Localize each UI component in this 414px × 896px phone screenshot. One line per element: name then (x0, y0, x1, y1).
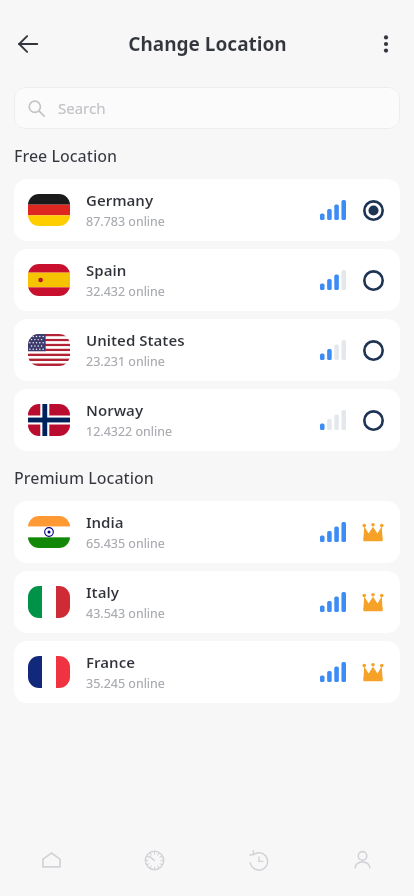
staticText: Spain (86, 260, 127, 280)
button[interactable]: Germany (14, 179, 400, 241)
staticText: Change Location (128, 31, 287, 57)
button[interactable]: Norway (14, 389, 400, 451)
staticText: 32.432 online (86, 283, 165, 300)
staticText: Italy (86, 582, 119, 602)
button[interactable]: Premium location (360, 519, 386, 545)
staticText: India (86, 512, 124, 532)
button[interactable]: Premium location (360, 589, 386, 615)
button[interactable]: India (14, 501, 400, 563)
staticText: 12.4322 online (86, 423, 173, 440)
button[interactable]: History (206, 825, 310, 896)
staticText: 43.543 online (86, 605, 165, 622)
button[interactable]: Select location (360, 267, 386, 293)
button[interactable]: Back (6, 22, 50, 66)
button[interactable]: United States (14, 319, 400, 381)
staticText: Free Location (14, 145, 118, 167)
staticText: United States (86, 330, 185, 350)
staticText: Search (58, 98, 106, 118)
button[interactable]: More options (366, 24, 406, 64)
staticText: 35.245 online (86, 675, 165, 692)
button[interactable]: Speed test (103, 825, 206, 896)
staticText: 23.231 online (86, 353, 165, 370)
button[interactable]: Selected location (360, 197, 386, 223)
staticText: 87.783 online (86, 213, 165, 230)
button[interactable]: Search (14, 87, 400, 129)
staticText: France (86, 652, 135, 672)
button[interactable]: Home (0, 825, 103, 896)
button[interactable]: Select location (360, 337, 386, 363)
staticText: 65.435 online (86, 535, 165, 552)
button[interactable]: Italy (14, 571, 400, 633)
staticText: Premium Location (14, 467, 154, 489)
button[interactable]: Profile (310, 825, 414, 896)
button[interactable]: France (14, 641, 400, 703)
button[interactable]: Spain (14, 249, 400, 311)
staticText: Norway (86, 400, 144, 420)
staticText: Germany (86, 190, 154, 210)
button[interactable]: Premium location (360, 659, 386, 685)
button[interactable]: Select location (360, 407, 386, 433)
